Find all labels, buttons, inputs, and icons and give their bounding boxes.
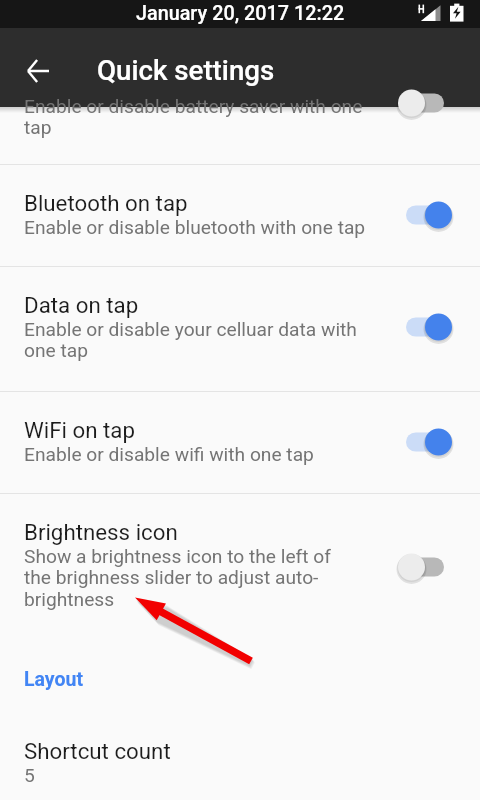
button[interactable]: Brightness icon <box>0 494 480 641</box>
staticText: Brightness icon <box>24 519 178 545</box>
staticText: Bluetooth on tap <box>24 190 188 216</box>
button[interactable]: Enable or disable battery saver with one… <box>0 107 480 164</box>
staticText: Layout <box>24 668 84 691</box>
staticText: Quick settings <box>97 54 275 86</box>
staticText: January 20, 2017 12:22 <box>136 2 345 25</box>
staticText: Enable or disable your celluar data with… <box>24 318 357 362</box>
staticText: Shortcut count <box>24 738 171 764</box>
staticText: WiFi on tap <box>24 417 135 443</box>
staticText: Enable or disable battery saver with one… <box>24 95 363 139</box>
button[interactable]: Back <box>14 47 62 95</box>
button[interactable]: Layout <box>0 641 480 697</box>
button[interactable]: Bluetooth on tap <box>0 165 480 266</box>
button[interactable]: WiFi on tap <box>0 392 480 493</box>
staticText: Enable or disable bluetooth with one tap <box>24 216 366 239</box>
staticText: Enable or disable wifi with one tap <box>24 443 314 466</box>
staticText: Data on tap <box>24 292 139 318</box>
button[interactable]: Data on tap <box>0 267 480 391</box>
button[interactable]: Shortcut count <box>0 697 480 787</box>
staticText: Show a brightness icon to the left of th… <box>24 545 331 611</box>
staticText: 5 <box>24 764 35 787</box>
